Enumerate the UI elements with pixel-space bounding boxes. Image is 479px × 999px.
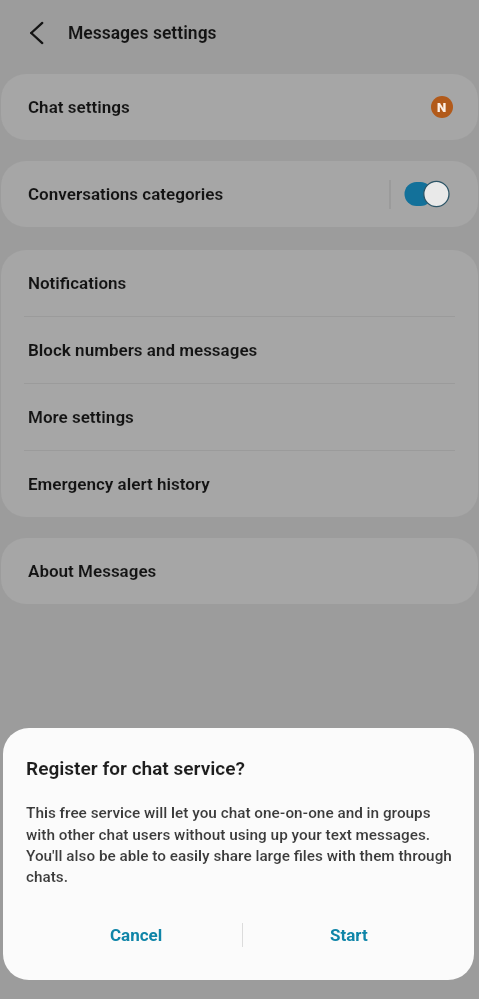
- button[interactable]: Block numbers and messages: [1, 317, 478, 383]
- button[interactable]: Chat settings: [1, 74, 478, 140]
- staticText: Chat settings: [28, 97, 130, 117]
- staticText: Emergency alert history: [28, 474, 210, 494]
- staticText: About Messages: [28, 561, 157, 581]
- staticText: Conversations categories: [28, 184, 224, 204]
- button[interactable]: Notifications: [1, 250, 478, 316]
- button[interactable]: Conversations categories switch: [403, 180, 449, 208]
- staticText: Start: [330, 925, 368, 945]
- button[interactable]: About Messages: [1, 538, 478, 604]
- staticText: N: [437, 100, 447, 115]
- staticText: Notifications: [28, 273, 127, 293]
- staticText: Cancel: [110, 925, 163, 945]
- staticText: Register for chat service?: [26, 757, 245, 779]
- staticText: More settings: [28, 407, 134, 427]
- button[interactable]: More settings: [1, 384, 478, 450]
- staticText: Block numbers and messages: [28, 340, 258, 360]
- button[interactable]: Navigate up: [17, 13, 57, 53]
- staticText: This free service will let you chat one-…: [26, 804, 457, 885]
- staticText: Messages settings: [68, 23, 217, 44]
- button[interactable]: Start: [243, 904, 455, 966]
- button[interactable]: Emergency alert history: [1, 451, 478, 517]
- button[interactable]: Cancel: [30, 904, 242, 966]
- button[interactable]: Conversations categories: [1, 161, 478, 227]
